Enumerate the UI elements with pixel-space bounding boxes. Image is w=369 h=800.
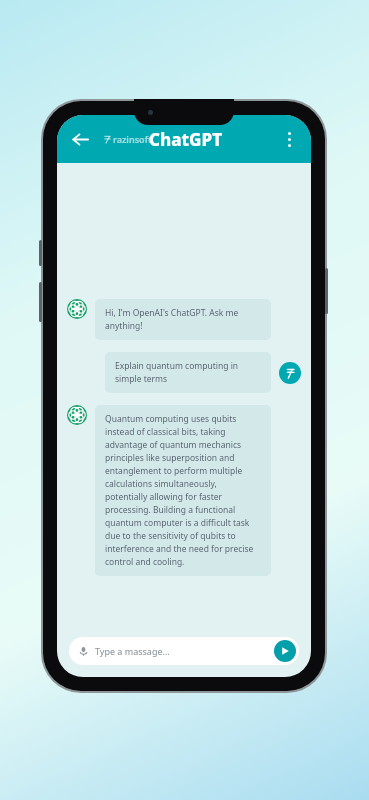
button[interactable]: Quantum computing uses qubits instead of… (95, 405, 271, 576)
staticText: ChatGPT (149, 128, 223, 151)
other: ChatGPT (67, 299, 87, 319)
staticText: Type a massage... (95, 645, 274, 657)
button[interactable]: Explain quantum computing in simple term… (105, 352, 271, 393)
button[interactable]: Back (63, 122, 97, 156)
staticText: Quantum computing uses qubits instead of… (105, 413, 261, 568)
other: Voice input (79, 647, 88, 656)
button[interactable]: Voice input (69, 637, 299, 665)
staticText: Explain quantum computing in simple term… (115, 360, 261, 385)
button[interactable]: Hi, I'm OpenAI's ChatGPT. Ask me anythin… (95, 299, 271, 340)
staticText: razinsoft (113, 133, 152, 145)
staticText: Hi, I'm OpenAI's ChatGPT. Ask me anythin… (105, 307, 261, 332)
other: User (279, 362, 301, 384)
other: ChatGPT (67, 405, 87, 425)
button[interactable]: More options (273, 123, 305, 155)
button[interactable]: Send (274, 640, 296, 662)
